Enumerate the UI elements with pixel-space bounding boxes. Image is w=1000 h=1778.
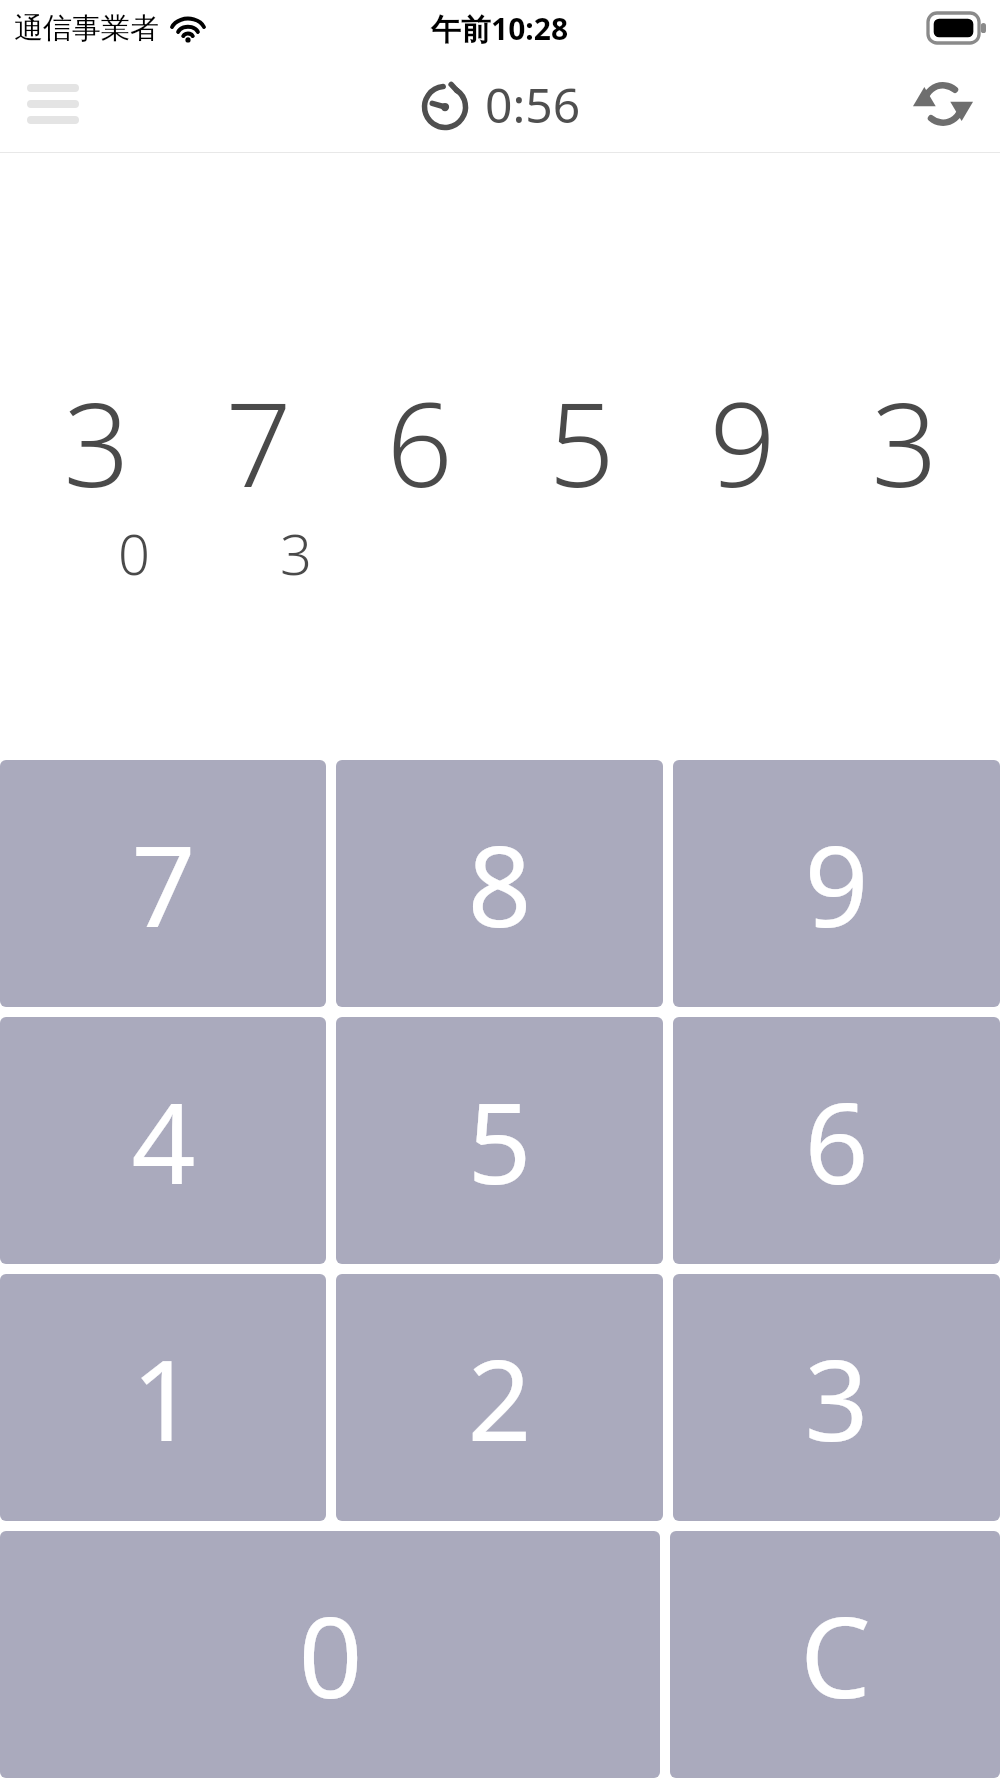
staticText: 5 [467,1064,532,1217]
staticText: 8 [467,807,532,960]
staticText: 午前10:28 [431,8,569,49]
button[interactable]: 4 [0,1017,326,1264]
button[interactable]: 2 [336,1274,663,1521]
button[interactable]: 0:56 [419,72,581,137]
staticText: 3 [63,363,130,521]
staticText: 7 [225,363,292,521]
staticText: 5 [548,363,615,521]
staticText: 0 [118,515,150,591]
button[interactable]: 7 [0,760,326,1007]
staticText: 3 [280,515,312,591]
staticText: 0:56 [485,72,581,137]
staticText: 0 [298,1578,363,1731]
button[interactable]: 0 [0,1531,660,1778]
staticText: 通信事業者 [14,10,159,47]
staticText: 1 [131,1321,196,1474]
staticText: 9 [804,807,869,960]
button[interactable]: 9 [673,760,1000,1007]
staticText: 4 [131,1064,196,1217]
staticText: 3 [804,1321,869,1474]
button[interactable]: 1 [0,1274,326,1521]
staticText: 9 [709,363,776,521]
staticText: 3 [871,363,938,521]
button[interactable]: 6 [673,1017,1000,1264]
button[interactable]: Menu [14,65,92,143]
staticText: 6 [804,1064,869,1217]
button[interactable]: 3 [673,1274,1000,1521]
button[interactable]: Refresh [900,61,986,147]
staticText: 7 [131,807,196,960]
button[interactable]: 8 [336,760,663,1007]
staticText: 6 [386,363,453,521]
staticText: C [800,1578,871,1731]
staticText: 2 [467,1321,532,1474]
button[interactable]: C [670,1531,1000,1778]
button[interactable]: 5 [336,1017,663,1264]
